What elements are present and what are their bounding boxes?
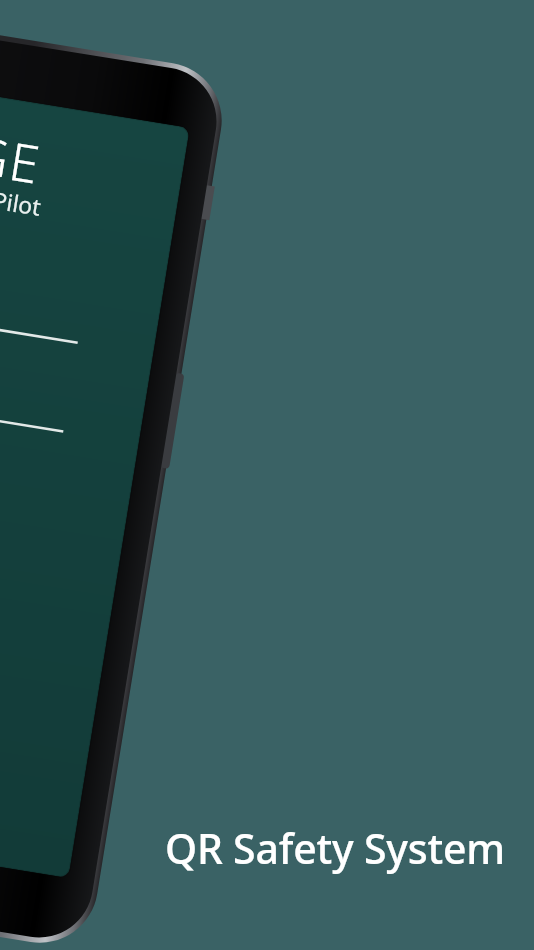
other: QR Safety System promotional screen <box>0 0 534 950</box>
button[interactable] <box>0 0 534 950</box>
